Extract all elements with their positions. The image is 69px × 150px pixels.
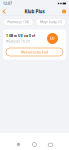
button[interactable]: Promocje (14) [3,18,33,25]
staticText: 1 GB w UE za 0 zł [6,33,35,38]
staticText: Moje kody (1) [40,20,62,24]
button[interactable]: Information [62,7,69,15]
button[interactable]: Wykorzystaj kod [6,48,63,56]
button[interactable]: Back [0,7,9,15]
staticText: EU [50,36,55,41]
button[interactable]: Messages [10,133,26,150]
button[interactable]: Offers [26,133,42,150]
staticText: Klub Plus [24,8,44,15]
staticText: Ważny do 18.09 [6,39,30,43]
staticText: 12:07 [3,1,12,6]
button[interactable]: Moje kody (1) [36,18,66,25]
staticText: Promocje (14) [7,20,29,24]
button[interactable]: Account [42,133,58,150]
staticText: Wykorzystaj kod [21,49,48,54]
